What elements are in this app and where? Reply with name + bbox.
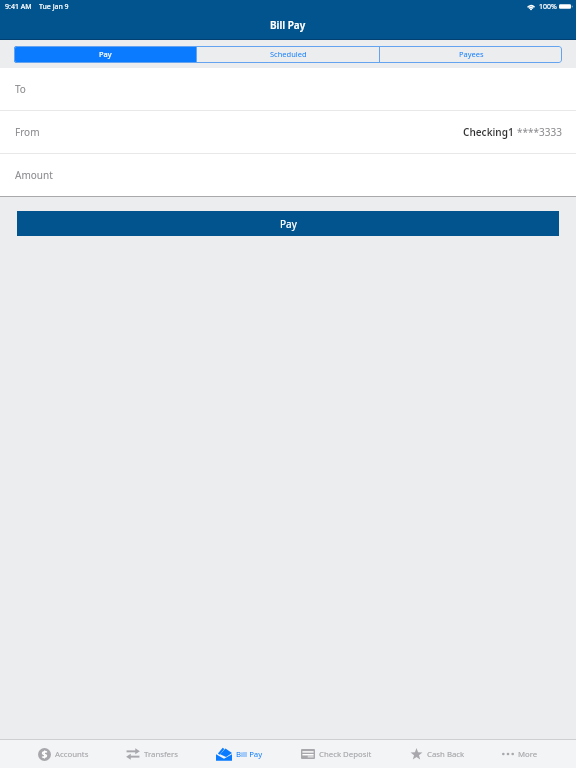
button[interactable]: Transfers [126,740,178,768]
button[interactable]: Bill Pay [216,740,263,768]
staticText: To [15,82,26,96]
staticText: ****3333 [517,125,562,139]
button[interactable]: Cash Back [410,740,465,768]
staticText: 100% [539,2,557,12]
staticText: Checking1 [463,125,514,139]
button[interactable]: Scheduled [197,46,379,63]
staticText: Transfers [144,749,178,760]
staticText: Check Deposit [319,749,372,760]
staticText: Accounts [55,749,89,760]
button[interactable]: Amount [0,154,576,196]
staticText: Pay [99,49,112,59]
staticText: Amount [15,168,53,182]
staticText: Cash Back [427,749,465,760]
button[interactable]: Check Deposit [301,740,372,768]
button[interactable]: Pay [17,211,559,236]
staticText: More [518,749,538,760]
button[interactable]: Payees [380,46,562,63]
staticText: Payees [459,49,484,59]
staticText: Bill Pay [270,18,306,32]
staticText: Tue Jan 9 [39,2,69,12]
button[interactable]: Pay [14,46,196,63]
button[interactable]: To [0,68,576,110]
staticText: 9:41 AM [5,2,32,12]
button[interactable]: Accounts [38,740,89,768]
button[interactable]: More [502,740,538,768]
staticText: Pay [280,217,297,231]
button[interactable]: From [0,111,576,153]
staticText: Scheduled [270,49,307,59]
staticText: Bill Pay [236,749,263,760]
staticText: From [15,125,40,139]
